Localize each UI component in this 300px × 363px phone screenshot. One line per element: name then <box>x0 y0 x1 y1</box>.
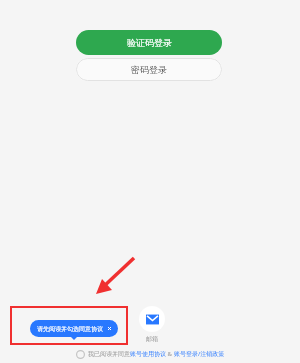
button[interactable]: 同意协议 <box>76 350 85 359</box>
staticText: & <box>166 350 174 358</box>
staticText: 密码登录 <box>131 64 167 75</box>
button[interactable]: 关闭 <box>108 326 111 333</box>
other: 邮箱登录 <box>139 306 165 332</box>
button[interactable]: 密码登录 <box>76 58 222 81</box>
button[interactable]: 请先阅读并勾选同意协议 <box>30 320 118 337</box>
button[interactable]: 账号使用协议 <box>130 350 166 358</box>
button[interactable]: 账号登录/注销政策 <box>174 350 225 358</box>
staticText: 邮箱 <box>146 335 158 343</box>
button[interactable]: 邮箱登录 <box>135 306 169 343</box>
staticText: 请先阅读并勾选同意协议 <box>37 325 103 333</box>
staticText: 我已阅读并同意 <box>88 350 130 358</box>
staticText: 验证码登录 <box>127 37 172 48</box>
button[interactable]: 验证码登录 <box>76 30 222 55</box>
